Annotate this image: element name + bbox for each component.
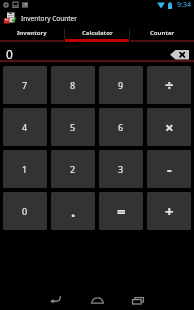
button[interactable]: Counter — [130, 26, 194, 42]
button[interactable] — [170, 50, 189, 60]
button[interactable] — [132, 297, 144, 305]
staticText: 9 — [118, 79, 124, 91]
button[interactable]: 4 — [3, 108, 47, 146]
button[interactable]: 6 — [99, 108, 143, 146]
button[interactable] — [50, 296, 61, 304]
staticText: 6 — [118, 121, 124, 133]
button[interactable]: - — [147, 150, 191, 188]
staticText: ÷ — [165, 75, 174, 95]
staticText: Calculator — [82, 29, 113, 37]
staticText: 3 — [118, 163, 124, 175]
button[interactable]: 1 — [3, 150, 47, 188]
staticText: 5 — [70, 121, 76, 133]
staticText: 1 — [22, 163, 28, 175]
staticText: 0 — [6, 46, 13, 62]
staticText: 0 — [22, 205, 28, 217]
staticText: - — [167, 159, 172, 179]
staticText: Inventory — [17, 29, 47, 37]
staticText: Counter — [150, 29, 175, 37]
button[interactable]: ÷ — [147, 66, 191, 104]
button[interactable]: 8 — [51, 66, 95, 104]
staticText: . — [71, 201, 76, 221]
button[interactable]: + — [147, 192, 191, 230]
staticText: × — [165, 117, 174, 137]
staticText: 7 — [22, 79, 28, 91]
button[interactable]: 3 — [99, 150, 143, 188]
button[interactable]: Calculator — [65, 26, 129, 42]
staticText: 2 — [70, 163, 76, 175]
staticText: + — [165, 201, 174, 221]
button[interactable] — [91, 297, 104, 304]
staticText: Inventory Counter — [21, 14, 77, 23]
button[interactable]: 9 — [99, 66, 143, 104]
button[interactable]: × — [147, 108, 191, 146]
button[interactable]: 5 — [51, 108, 95, 146]
staticText: 4 — [22, 121, 28, 133]
staticText: 8 — [70, 79, 76, 91]
staticText: = — [117, 201, 126, 221]
button[interactable]: Inventory — [0, 26, 64, 42]
button[interactable]: 0 — [3, 192, 47, 230]
staticText: 9:34 — [177, 0, 191, 10]
button[interactable]: 7 — [3, 66, 47, 104]
button[interactable]: 2 — [51, 150, 95, 188]
button[interactable]: . — [51, 192, 95, 230]
button[interactable]: = — [99, 192, 143, 230]
